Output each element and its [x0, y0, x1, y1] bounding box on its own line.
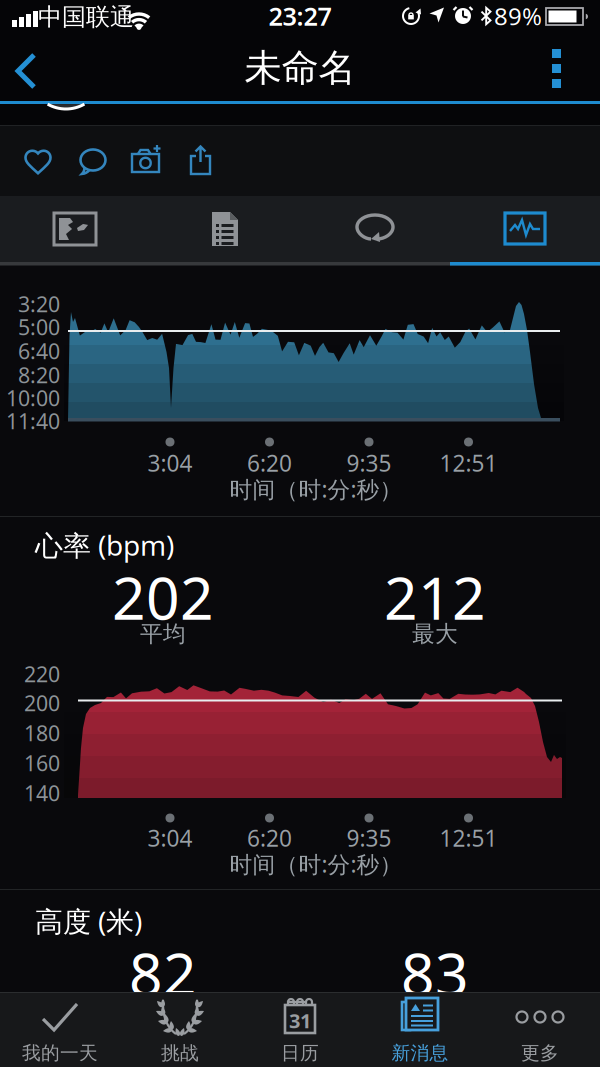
button[interactable]: 照片 — [0, 198, 150, 260]
button[interactable]: 更多操作 — [538, 44, 574, 92]
staticText: 5:00 — [18, 313, 60, 341]
button[interactable]: 喜欢 — [16, 140, 60, 184]
staticText: 中国联通 — [38, 2, 134, 32]
button[interactable]: 日历 — [240, 992, 360, 1067]
staticText: 平均 — [140, 620, 186, 648]
staticText: 最大 — [412, 620, 458, 648]
staticText: 140 — [24, 779, 60, 807]
button[interactable]: 我的一天 — [0, 992, 120, 1067]
staticText: 12:51 — [439, 448, 497, 478]
staticText: 时间（时:分:秒） — [229, 474, 402, 504]
staticText: 时间（时:分:秒） — [229, 849, 402, 879]
staticText: 160 — [24, 749, 60, 777]
staticText: 9:35 — [346, 823, 391, 853]
staticText: 212 — [384, 558, 486, 636]
staticText: 23:27 — [268, 0, 331, 33]
staticText: 8:20 — [18, 361, 60, 389]
staticText: 心率 (bpm) — [35, 526, 174, 564]
staticText: 202 — [112, 558, 214, 636]
staticText: 83 — [401, 934, 469, 1012]
staticText: 6:20 — [247, 448, 292, 478]
staticText: 更多 — [521, 1041, 559, 1064]
staticText: 10:00 — [6, 384, 60, 412]
button[interactable]: 新消息 — [360, 992, 480, 1067]
staticText: 200 — [24, 689, 60, 717]
staticText: 新消息 — [391, 1041, 448, 1064]
staticText: 31 — [289, 1007, 311, 1034]
staticText: 180 — [24, 719, 60, 747]
staticText: 220 — [24, 660, 60, 688]
button[interactable]: 更多 — [480, 992, 600, 1067]
button[interactable]: 挑战 — [120, 992, 240, 1067]
staticText: 3:20 — [18, 290, 60, 318]
staticText: 日历 — [281, 1041, 319, 1064]
button[interactable]: 添加照片 — [125, 140, 169, 184]
button[interactable]: 计圈 — [300, 198, 450, 260]
staticText: 挑战 — [161, 1041, 199, 1064]
staticText: 3:04 — [147, 448, 192, 478]
staticText: 12:51 — [439, 823, 497, 853]
button[interactable]: 分享 — [179, 140, 223, 184]
staticText: 高度 (米) — [35, 902, 142, 940]
staticText: 82 — [129, 934, 197, 1012]
button[interactable]: 评论 — [71, 140, 115, 184]
button[interactable]: 详情 — [150, 198, 300, 260]
staticText: 我的一天 — [22, 1041, 98, 1064]
staticText: 6:40 — [18, 337, 60, 365]
staticText: 89% — [494, 0, 542, 32]
button[interactable]: 返回 — [8, 47, 44, 95]
staticText: 6:20 — [247, 823, 292, 853]
button[interactable]: 图表 — [450, 198, 600, 260]
staticText: 3:04 — [147, 823, 192, 853]
staticText: 9:35 — [346, 448, 391, 478]
staticText: 11:40 — [6, 407, 60, 435]
staticText: 未命名 — [244, 45, 355, 91]
